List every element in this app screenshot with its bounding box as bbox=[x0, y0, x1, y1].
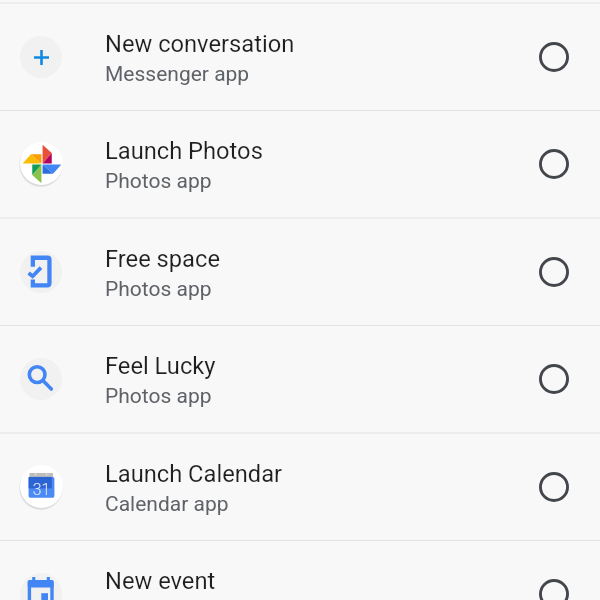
staticText: Launch Photos bbox=[105, 137, 263, 165]
staticText: Photos app bbox=[105, 277, 212, 302]
staticText: Photos app bbox=[105, 384, 212, 409]
button[interactable]: New conversation bbox=[0, 4, 600, 111]
button[interactable]: Select New event bbox=[506, 560, 600, 600]
staticText: Feel Lucky bbox=[105, 352, 216, 380]
button[interactable]: New event bbox=[0, 541, 600, 600]
staticText: New conversation bbox=[105, 30, 295, 58]
button[interactable]: 31 bbox=[0, 434, 600, 541]
staticText: Messenger app bbox=[105, 62, 250, 87]
staticText: Launch Calendar bbox=[105, 460, 283, 488]
button[interactable]: Select Free space bbox=[506, 238, 600, 308]
staticText: Free space bbox=[105, 245, 220, 273]
button[interactable]: Select Launch Calendar bbox=[506, 453, 600, 523]
staticText: Photos app bbox=[105, 169, 212, 194]
button[interactable]: Select Feel Lucky bbox=[506, 345, 600, 415]
button[interactable]: Select New conversation bbox=[506, 23, 600, 93]
staticText: 31 bbox=[28, 480, 55, 506]
staticText: New event bbox=[105, 567, 216, 595]
button[interactable]: Launch Photos bbox=[0, 111, 600, 218]
button[interactable]: Select Launch Photos bbox=[506, 130, 600, 200]
staticText: Calendar app bbox=[105, 492, 229, 517]
button[interactable]: Feel Lucky bbox=[0, 326, 600, 433]
button[interactable]: Free space bbox=[0, 219, 600, 326]
